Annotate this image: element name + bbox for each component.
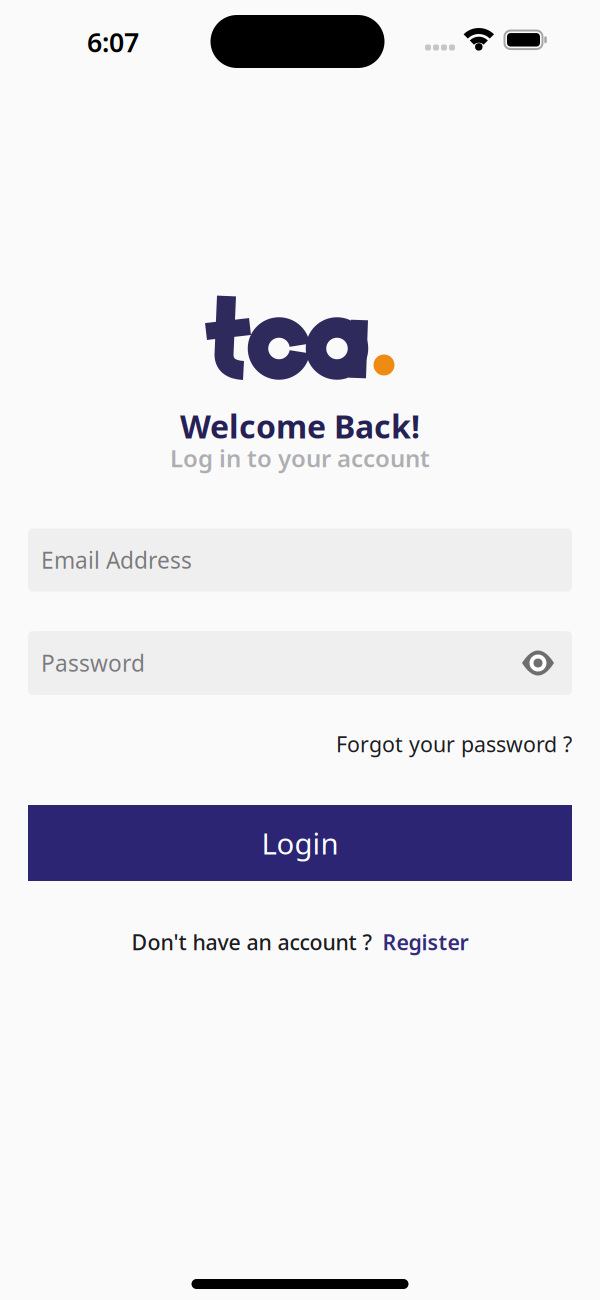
staticText: Email Address	[41, 545, 192, 575]
staticText: Register	[382, 928, 468, 956]
staticText: Log in to your account	[170, 442, 430, 474]
button[interactable]: Login	[28, 805, 572, 881]
button[interactable]: Register	[382, 928, 468, 956]
staticText: Login	[261, 823, 338, 862]
staticText: Forgot your password ?	[336, 730, 572, 758]
staticText: 6:07	[87, 24, 139, 60]
button[interactable]: Show password	[521, 650, 555, 676]
button[interactable]: Email Address	[28, 528, 572, 591]
button[interactable]: Password	[28, 631, 572, 695]
staticText: Don't have an account ?	[131, 928, 372, 956]
staticText: Welcome Back!	[180, 405, 420, 447]
staticText: Password	[41, 648, 145, 678]
button[interactable]: Forgot your password ?	[336, 730, 572, 758]
